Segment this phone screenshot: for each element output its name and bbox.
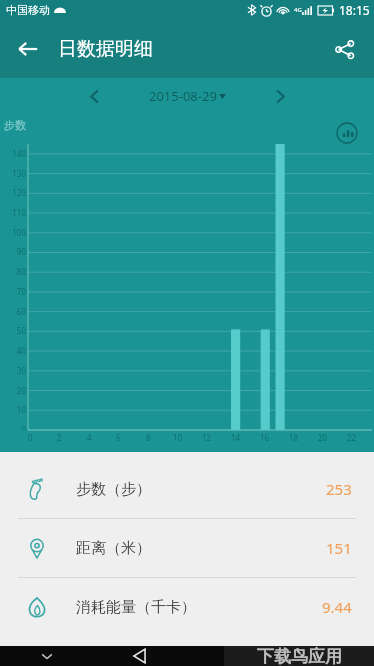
staticText: 4 <box>87 432 92 443</box>
staticText: 2 <box>57 432 62 443</box>
staticText: 110 <box>0 207 26 218</box>
button[interactable]: Chart type <box>334 120 360 146</box>
button[interactable]: Previous day <box>76 78 112 114</box>
staticText: 140 <box>0 148 26 159</box>
staticText: 0 <box>0 424 26 430</box>
staticText: 步数 <box>4 118 26 132</box>
staticText: 日数据明细 <box>58 37 153 61</box>
staticText: 中国移动 <box>6 3 50 17</box>
staticText: 16 <box>260 432 270 443</box>
staticText: 0 <box>28 432 33 443</box>
staticText: 距离（米） <box>76 539 151 558</box>
button[interactable]: 2015-08-29 <box>149 87 217 105</box>
staticText: 消耗能量（千卡） <box>76 598 196 617</box>
staticText: 90 <box>0 246 26 257</box>
staticText: 10 <box>173 432 183 443</box>
staticText: 70 <box>0 286 26 297</box>
staticText: 100 <box>0 227 26 238</box>
staticText: 40 <box>0 345 26 356</box>
button[interactable]: Share <box>322 27 366 71</box>
staticText: 60 <box>0 306 26 317</box>
button[interactable]: 距离（米） <box>0 519 374 577</box>
staticText: 步数（步） <box>76 480 151 499</box>
staticText: 151 <box>326 538 352 558</box>
staticText: 9.44 <box>322 597 352 617</box>
staticText: 22 <box>347 432 357 443</box>
button[interactable]: 消耗能量（千卡） <box>0 578 374 636</box>
staticText: 下载鸟应用 <box>257 646 342 666</box>
staticText: 4G <box>294 6 302 14</box>
staticText: 6 <box>116 432 121 443</box>
staticText: 20 <box>0 385 26 396</box>
button[interactable]: Back <box>93 646 186 666</box>
staticText: 20 <box>318 432 328 443</box>
button[interactable]: Hide keyboard <box>0 646 93 666</box>
staticText: 50 <box>0 325 26 336</box>
staticText: 12 <box>202 432 212 443</box>
staticText: 253 <box>326 479 352 499</box>
button[interactable]: Next day <box>262 78 298 114</box>
staticText: 120 <box>0 187 26 198</box>
staticText: 130 <box>0 168 26 179</box>
button[interactable]: Back <box>8 29 48 69</box>
staticText: 8 <box>146 432 151 443</box>
staticText: 80 <box>0 266 26 277</box>
staticText: 18 <box>289 432 299 443</box>
staticText: 30 <box>0 365 26 376</box>
button[interactable]: 步数（步） <box>0 460 374 518</box>
staticText: 18:15 <box>339 2 370 18</box>
staticText: 14 <box>231 432 241 443</box>
staticText: 10 <box>0 404 26 415</box>
button[interactable]: Home <box>186 646 280 666</box>
